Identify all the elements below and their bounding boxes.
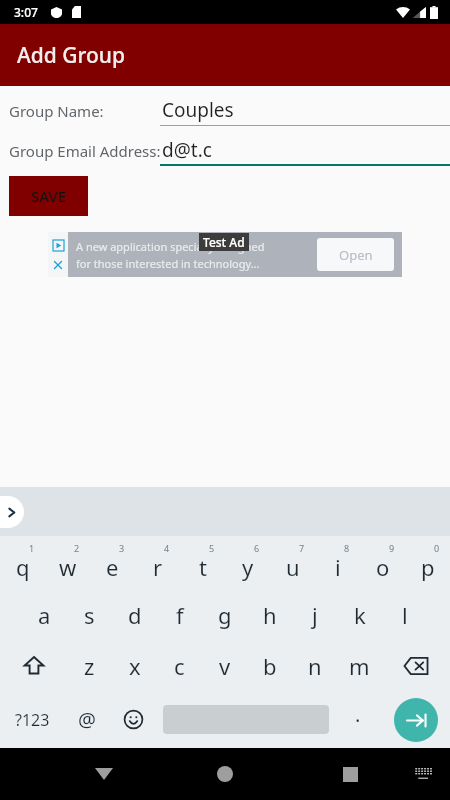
button[interactable]: Emoji — [110, 691, 156, 748]
button[interactable]: . — [335, 691, 381, 748]
button[interactable]: 0 — [405, 536, 450, 589]
staticText: Group Email Address: — [9, 141, 161, 161]
button[interactable]: g — [202, 589, 247, 640]
button[interactable]: d@t.c — [160, 136, 450, 166]
button[interactable]: ?123 — [0, 691, 64, 748]
staticText: o — [376, 552, 390, 582]
staticText: q — [16, 552, 30, 582]
button[interactable]: Enter — [381, 691, 450, 748]
button[interactable]: 6 — [225, 536, 270, 589]
button[interactable]: Expand suggestions — [0, 496, 24, 528]
staticText: for those interested in technology… — [76, 256, 260, 271]
staticText: k — [354, 600, 366, 630]
staticText: 6 — [254, 542, 260, 554]
button[interactable]: Home — [203, 752, 247, 796]
button[interactable]: Open — [317, 238, 394, 271]
staticText: g — [218, 600, 232, 630]
staticText: 0 — [434, 542, 440, 554]
button[interactable]: Backspace — [382, 640, 450, 691]
button[interactable]: n — [292, 640, 337, 691]
staticText: l — [402, 600, 408, 630]
staticText: v — [219, 651, 231, 681]
button[interactable]: 4 — [135, 536, 180, 589]
staticText: Group Name: — [9, 101, 104, 121]
staticText: A new application specially designed — [76, 239, 265, 254]
other: Close ad — [53, 260, 63, 270]
staticText: f — [176, 600, 184, 630]
other: Ad choices — [53, 240, 64, 251]
staticText: Test Ad — [203, 234, 245, 250]
button[interactable]: x — [112, 640, 157, 691]
staticText: Couples — [162, 97, 234, 123]
button[interactable]: 1 — [0, 536, 45, 589]
staticText: t — [199, 552, 207, 582]
button[interactable]: s — [67, 589, 112, 640]
button[interactable]: d — [112, 589, 157, 640]
button[interactable]: v — [202, 640, 247, 691]
staticText: z — [84, 651, 95, 681]
staticText: 5 — [209, 542, 215, 554]
button[interactable]: Back — [82, 752, 126, 796]
button[interactable]: Shift — [0, 640, 67, 691]
button[interactable]: a — [22, 589, 67, 640]
button[interactable]: SAVE — [9, 176, 88, 216]
staticText: m — [349, 651, 370, 681]
staticText: x — [129, 651, 141, 681]
staticText: SAVE — [31, 186, 67, 206]
staticText: 3:07 — [14, 4, 38, 20]
staticText: 7 — [299, 542, 305, 554]
button[interactable]: 8 — [315, 536, 360, 589]
staticText: 9 — [389, 542, 395, 554]
button[interactable]: Couples — [160, 96, 450, 126]
button[interactable]: z — [67, 640, 112, 691]
button[interactable]: l — [382, 589, 427, 640]
staticText: c — [174, 651, 185, 681]
staticText: d — [128, 600, 142, 630]
staticText: ?123 — [15, 709, 50, 731]
staticText: Add Group — [17, 41, 126, 70]
button[interactable]: Space — [156, 691, 335, 748]
button[interactable]: Switch keyboard — [404, 754, 444, 794]
staticText: j — [312, 600, 318, 630]
staticText: e — [106, 552, 119, 582]
staticText: h — [263, 600, 277, 630]
button[interactable]: k — [337, 589, 382, 640]
staticText: r — [153, 552, 163, 582]
staticText: Open — [339, 246, 373, 264]
staticText: y — [242, 552, 254, 582]
staticText: . — [355, 701, 361, 728]
button[interactable]: Recent apps — [328, 752, 372, 796]
staticText: d@t.c — [162, 137, 212, 163]
staticText: 8 — [344, 542, 350, 554]
staticText: n — [308, 651, 322, 681]
button[interactable]: f — [157, 589, 202, 640]
staticText: p — [421, 552, 435, 582]
staticText: 4 — [164, 542, 170, 554]
button[interactable]: 3 — [90, 536, 135, 589]
button[interactable]: Ad choices — [48, 232, 402, 277]
staticText: b — [263, 651, 277, 681]
staticText: s — [84, 600, 95, 630]
button[interactable]: 5 — [180, 536, 225, 589]
staticText: w — [59, 552, 77, 582]
staticText: 3 — [119, 542, 125, 554]
button[interactable]: j — [292, 589, 337, 640]
staticText: u — [286, 552, 300, 582]
button[interactable]: 9 — [360, 536, 405, 589]
button[interactable]: h — [247, 589, 292, 640]
staticText: 1 — [29, 542, 35, 554]
staticText: 2 — [74, 542, 80, 554]
button[interactable]: 7 — [270, 536, 315, 589]
staticText: @ — [78, 706, 96, 733]
button[interactable]: c — [157, 640, 202, 691]
staticText: i — [335, 552, 341, 582]
button[interactable]: m — [337, 640, 382, 691]
button[interactable]: @ — [64, 691, 110, 748]
staticText: a — [38, 600, 51, 630]
button[interactable]: 2 — [45, 536, 90, 589]
button[interactable]: b — [247, 640, 292, 691]
